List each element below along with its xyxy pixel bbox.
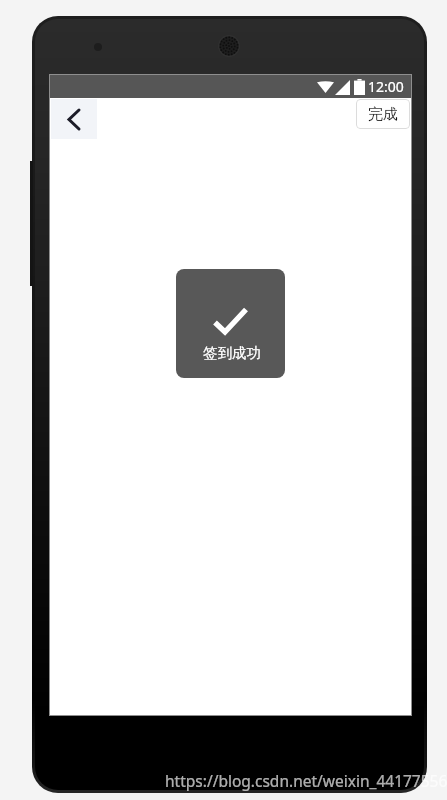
staticText: 签到成功 — [203, 344, 261, 362]
staticText: 12:00 — [368, 77, 404, 96]
button[interactable]: 完成 — [356, 99, 410, 129]
button[interactable]: Back — [51, 99, 97, 139]
staticText: 完成 — [368, 105, 398, 124]
staticText: https://blog.csdn.net/weixin_44177556 — [165, 770, 447, 791]
